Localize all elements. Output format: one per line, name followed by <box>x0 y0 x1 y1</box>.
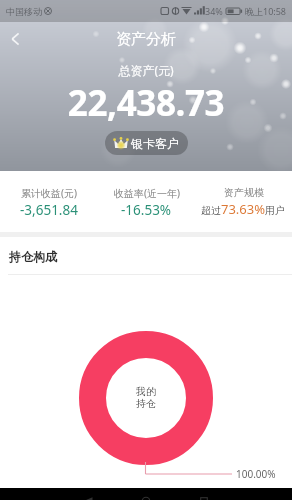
staticText: 100.00% <box>236 467 276 481</box>
staticText: 34% <box>205 5 223 17</box>
staticText: 总资产(元) <box>0 62 292 78</box>
staticText: -16.53% <box>121 201 172 219</box>
button[interactable]: Recents <box>197 496 211 500</box>
staticText: 累计收益(元) <box>21 186 77 200</box>
button[interactable]: 银卡客户 <box>105 131 188 155</box>
staticText: 资产分析 <box>116 30 176 49</box>
staticText: 超过73.63%用户 <box>201 200 286 218</box>
staticText: 22,438.73 <box>0 79 292 127</box>
button[interactable]: Home <box>139 496 153 500</box>
button[interactable]: Back <box>81 496 95 500</box>
button[interactable]: Back <box>0 22 34 56</box>
staticText: 收益率(近一年) <box>114 186 180 200</box>
staticText: 持仓构成 <box>9 249 57 264</box>
staticText: 银卡客户 <box>131 136 179 151</box>
staticText: 我的 持仓 <box>0 385 292 410</box>
staticText: 中国移动 <box>6 6 42 17</box>
staticText: 晚上10:58 <box>245 5 287 17</box>
staticText: 资产规模 <box>224 186 264 199</box>
staticText: -3,651.84 <box>20 201 78 219</box>
